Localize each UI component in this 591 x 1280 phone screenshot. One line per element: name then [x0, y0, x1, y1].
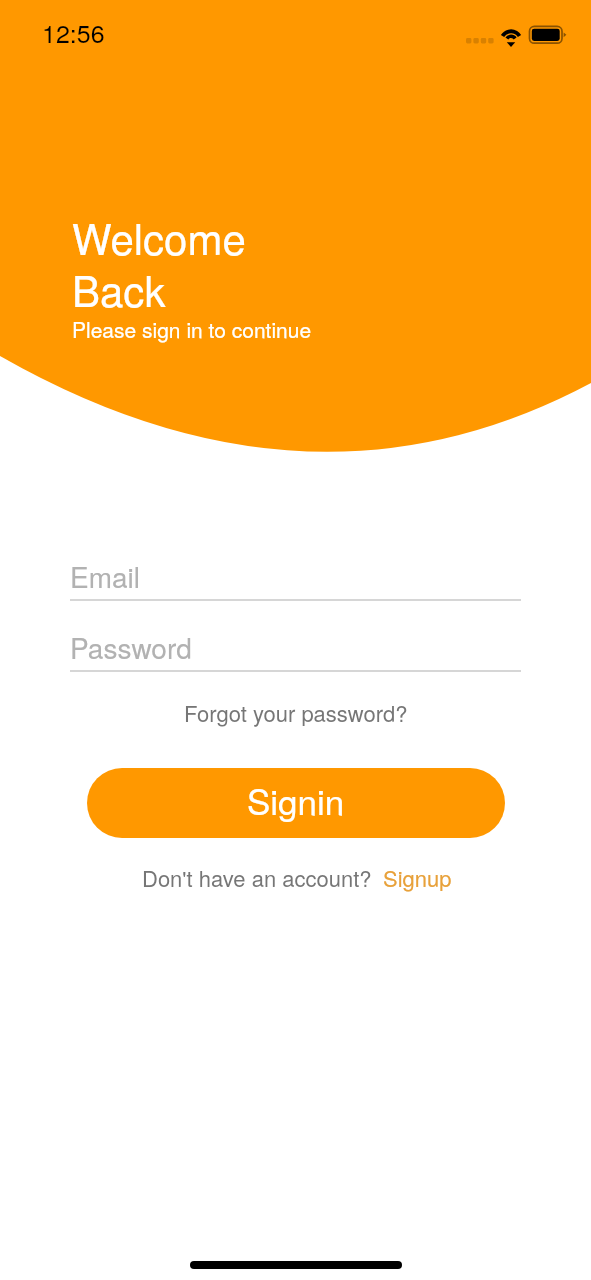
button[interactable]: Signup: [381, 858, 454, 898]
staticText: Signin: [247, 775, 345, 825]
button[interactable]: Email: [70, 556, 521, 601]
staticText: Don't have an account?: [142, 862, 372, 894]
staticText: Please sign in to continue: [72, 314, 312, 344]
staticText: 12:56: [42, 14, 105, 50]
staticText: Back: [72, 259, 166, 319]
button[interactable]: Forgot your password?: [174, 693, 418, 733]
button[interactable]: Password: [70, 627, 521, 672]
staticText: Forgot your password?: [184, 697, 408, 729]
other: Home indicator: [190, 1261, 402, 1269]
staticText: Email: [70, 556, 141, 596]
staticText: Welcome: [72, 207, 246, 267]
staticText: Signup: [383, 862, 452, 894]
button[interactable]: Signin: [87, 768, 505, 838]
other: Status icons: [460, 20, 570, 50]
staticText: Password: [70, 627, 192, 667]
